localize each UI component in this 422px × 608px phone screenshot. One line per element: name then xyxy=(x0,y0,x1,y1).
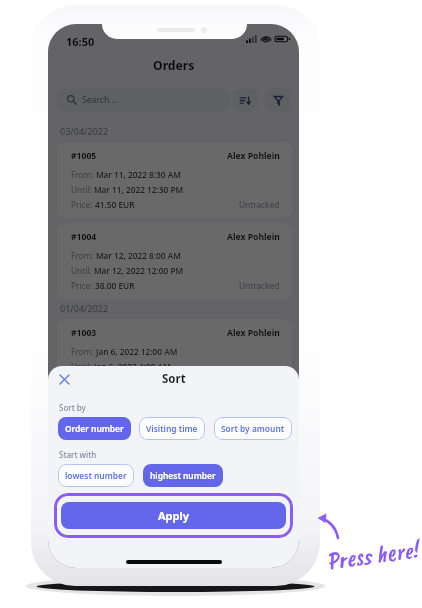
button[interactable]: Filter xyxy=(265,88,291,112)
staticText: Sort by amount xyxy=(221,423,285,434)
button[interactable]: Order number xyxy=(58,417,131,440)
staticText: Sort xyxy=(162,371,186,387)
staticText: Untracked xyxy=(239,199,280,210)
staticText: Alex Pohlein xyxy=(227,150,280,162)
staticText: Order number xyxy=(65,423,124,434)
button[interactable]: Sort xyxy=(232,88,258,112)
staticText: Search ... xyxy=(82,94,119,106)
staticText: Mar 12, 2022 12:00 PM xyxy=(94,265,184,276)
staticText: Jan 6, 2022 4:00 AM xyxy=(94,361,171,372)
staticText: Until: xyxy=(71,361,94,372)
button[interactable]: Sort by amount xyxy=(214,417,292,440)
staticText: Jan 6, 2022 12:00 AM xyxy=(96,346,178,357)
staticText: Start with xyxy=(59,449,97,460)
staticText: 03/04/2022 xyxy=(60,125,109,137)
staticText: Until: xyxy=(71,265,94,276)
button[interactable]: Close xyxy=(56,371,73,388)
staticText: 01/04/2022 xyxy=(60,302,109,314)
button[interactable]: #1004 xyxy=(57,223,292,299)
staticText: #1003 xyxy=(71,327,97,339)
staticText: Visiting time xyxy=(146,423,198,434)
staticText: highest number xyxy=(150,470,216,481)
button[interactable]: lowest number xyxy=(58,464,134,487)
staticText: Orders xyxy=(153,57,195,74)
staticText: Price: xyxy=(71,199,95,210)
staticText: Sort by xyxy=(59,402,86,413)
staticText: #1005 xyxy=(71,150,97,162)
staticText: From: xyxy=(71,346,96,357)
staticText: Mar 11, 2022 8:30 AM xyxy=(96,169,181,180)
staticText: Mar 11, 2022 12:30 PM xyxy=(94,184,184,195)
staticText: 38.00 EUR xyxy=(95,280,135,291)
staticText: 41.50 EUR xyxy=(95,199,135,210)
button[interactable]: #1005 xyxy=(57,142,292,218)
staticText: Press here! xyxy=(324,534,420,576)
staticText: Apply xyxy=(158,508,190,523)
staticText: Untracked xyxy=(239,280,280,291)
staticText: 16:50 xyxy=(66,34,95,49)
staticText: lowest number xyxy=(65,470,127,481)
staticText: #1004 xyxy=(71,231,97,243)
button[interactable]: #1003 xyxy=(57,319,292,395)
staticText: Alex Pohlein xyxy=(227,327,280,339)
button[interactable]: Visiting time xyxy=(139,417,205,440)
staticText: Price: xyxy=(71,280,95,291)
button[interactable]: Search ... xyxy=(57,88,229,112)
button[interactable]: highest number xyxy=(143,464,223,487)
staticText: From: xyxy=(71,250,96,261)
button[interactable]: Apply xyxy=(61,502,286,529)
staticText: Until: xyxy=(71,184,94,195)
staticText: From: xyxy=(71,169,96,180)
staticText: Alex Pohlein xyxy=(227,231,280,243)
staticText: Mar 12, 2022 8:00 AM xyxy=(96,250,181,261)
